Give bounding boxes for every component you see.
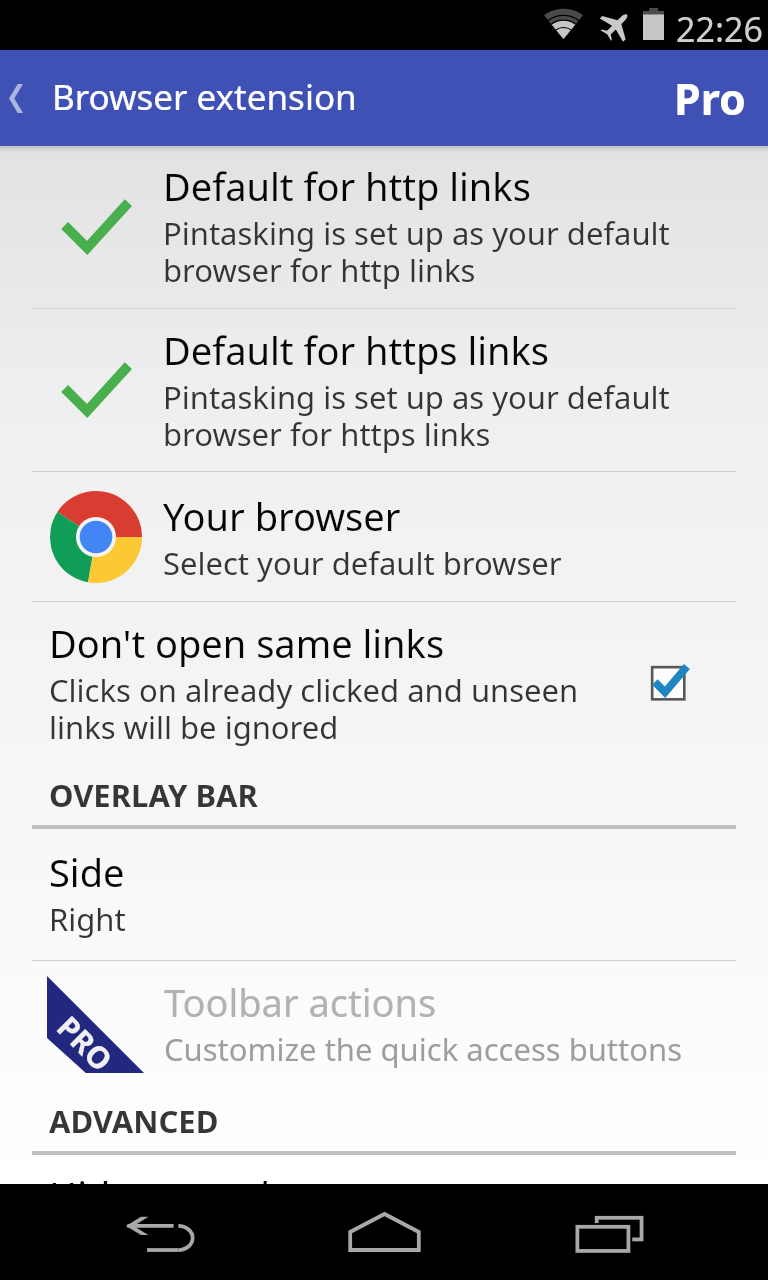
staticText: OVERLAY BAR xyxy=(49,774,258,816)
button[interactable]: Hide status bar xyxy=(0,1136,768,1184)
staticText: Browser extension xyxy=(52,73,357,121)
button[interactable]: Default for http links xyxy=(0,146,768,308)
staticText: Don't open same links xyxy=(49,617,445,669)
staticText: Side xyxy=(49,846,125,898)
staticText: PRO xyxy=(49,1007,122,1080)
staticText: Pro xyxy=(674,69,746,128)
staticText: Toolbar actions xyxy=(164,976,437,1028)
button[interactable]: PRO xyxy=(0,961,768,1088)
button[interactable]: Navigate up xyxy=(0,50,31,146)
button[interactable]: Pro xyxy=(650,63,768,134)
staticText: Clicks on already clicked and unseen lin… xyxy=(49,669,579,748)
button[interactable]: Side xyxy=(0,829,768,960)
staticText: 22:26 xyxy=(676,6,763,52)
button[interactable]: Default for https links xyxy=(0,309,768,471)
staticText: Select your default browser xyxy=(163,542,562,584)
button[interactable]: Recent apps xyxy=(560,1184,656,1280)
button[interactable]: Back xyxy=(112,1184,208,1280)
staticText: Your browser xyxy=(163,490,401,542)
button[interactable]: Don't open same links xyxy=(0,602,768,762)
staticText: Hide status bar xyxy=(49,1169,321,1184)
staticText: Pintasking is set up as your default bro… xyxy=(163,376,670,455)
button[interactable]: Home xyxy=(336,1184,432,1280)
staticText: Default for https links xyxy=(163,324,550,376)
staticText: Right xyxy=(49,898,126,940)
staticText: ADVANCED xyxy=(49,1100,219,1142)
staticText: Default for http links xyxy=(163,160,531,212)
button[interactable]: Your browser xyxy=(0,472,768,601)
staticText: Customize the quick access buttons xyxy=(164,1028,683,1070)
staticText: Pintasking is set up as your default bro… xyxy=(163,212,670,291)
